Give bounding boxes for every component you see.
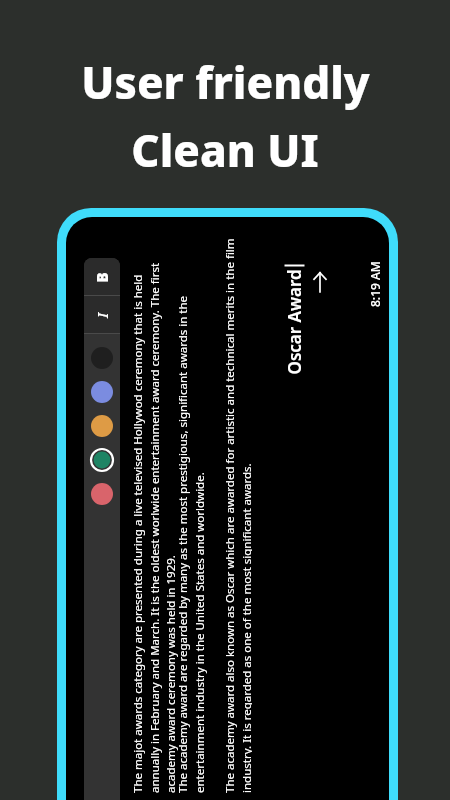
staticText: The academy award also known as Oscar wh… xyxy=(222,233,252,793)
button[interactable]: The academy award also known as Oscar wh… xyxy=(222,233,252,793)
button[interactable]: The majot awards category are presented … xyxy=(130,233,182,793)
staticText: I xyxy=(92,312,112,318)
staticText: Clean UI xyxy=(131,120,319,180)
button[interactable]: Oscar Award xyxy=(282,265,305,375)
button[interactable]: Colour swatch xyxy=(88,480,116,508)
button[interactable]: The academy award are regarded by many a… xyxy=(175,233,219,793)
button[interactable]: Colour swatch xyxy=(88,412,116,440)
staticText: B xyxy=(91,271,111,282)
staticText: 8:19 AM xyxy=(367,261,383,307)
button[interactable]: Colour swatch xyxy=(88,446,116,474)
staticText: The majot awards category are presented … xyxy=(130,233,178,793)
button[interactable]: B xyxy=(84,258,120,295)
staticText: The academy award are regarded by many a… xyxy=(175,233,207,793)
staticText: Oscar Award xyxy=(282,268,305,374)
button[interactable]: Back xyxy=(303,265,337,299)
staticText: User friendly xyxy=(81,52,370,112)
button[interactable]: I xyxy=(84,296,120,333)
button[interactable]: Colour swatch xyxy=(88,378,116,406)
button[interactable]: Colour swatch xyxy=(88,344,116,372)
